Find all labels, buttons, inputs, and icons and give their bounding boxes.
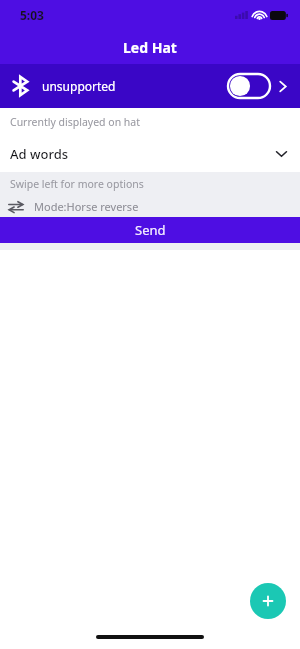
button[interactable]: Add — [250, 583, 286, 619]
other: Bluetooth — [12, 75, 28, 97]
button[interactable]: Send — [0, 217, 300, 243]
staticText: unsupported — [42, 78, 116, 94]
button[interactable]: Bluetooth toggle — [228, 74, 270, 98]
staticText: Mode:Horse reverse — [34, 199, 139, 214]
staticText: Send — [135, 221, 166, 239]
other: Mode — [8, 200, 24, 214]
staticText: Ad words — [10, 145, 69, 163]
button[interactable]: Mode — [0, 196, 300, 217]
staticText: Led Hat — [123, 38, 177, 57]
button[interactable]: More — [276, 76, 290, 96]
button[interactable]: Ad words — [0, 136, 300, 172]
staticText: 5:03 — [20, 7, 44, 23]
staticText: Swipe left for more options — [10, 177, 144, 191]
button[interactable]: Bluetooth — [0, 64, 300, 108]
staticText: Currently displayed on hat — [10, 115, 141, 129]
